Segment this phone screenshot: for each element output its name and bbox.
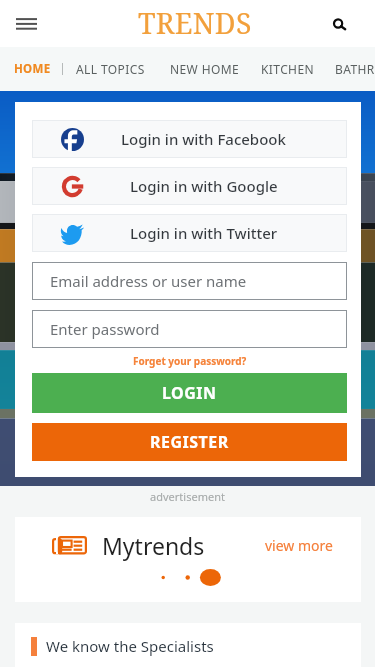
button[interactable]: REGISTER [32,423,347,461]
button[interactable]: Email address or user name [32,262,347,300]
staticText: ALL TOPICS [76,61,145,77]
button[interactable]: NEW HOME [170,61,240,77]
button[interactable]: view more [265,536,333,555]
staticText: KITCHEN [261,61,314,77]
staticText: Login in with Twitter [130,223,278,243]
staticText: Login in with Facebook [121,129,286,149]
button[interactable]: BATHROOM [335,61,375,77]
staticText: view more [265,536,333,555]
button[interactable]: KITCHEN [261,61,314,77]
staticText: LOGIN [162,382,217,404]
button[interactable]: HOME [14,61,51,77]
staticText: advertisement [0,489,375,504]
staticText: We know the Specialists [46,636,214,656]
button[interactable]: Login in with Google [32,167,347,205]
button[interactable]: ALL TOPICS [76,61,145,77]
button[interactable]: Login in with Twitter [32,214,347,252]
staticText: Forget your password? [133,354,247,368]
staticText: Enter password [50,319,160,339]
button[interactable]: LOGIN [32,373,347,413]
staticText: BATHROOM [335,61,375,77]
staticText: Mytrends [102,530,205,561]
staticText: TRENDS [138,4,252,43]
button[interactable]: Enter password [32,310,347,348]
staticText: Email address or user name [50,271,247,291]
button[interactable]: Search [328,13,350,35]
button[interactable]: Menu [4,2,48,46]
button[interactable]: Forget your password? [32,348,347,373]
staticText: HOME [14,61,51,77]
staticText: NEW HOME [170,61,240,77]
staticText: REGISTER [150,431,229,453]
button[interactable]: Login in with Facebook [32,120,347,158]
staticText: Login in with Google [130,176,278,196]
